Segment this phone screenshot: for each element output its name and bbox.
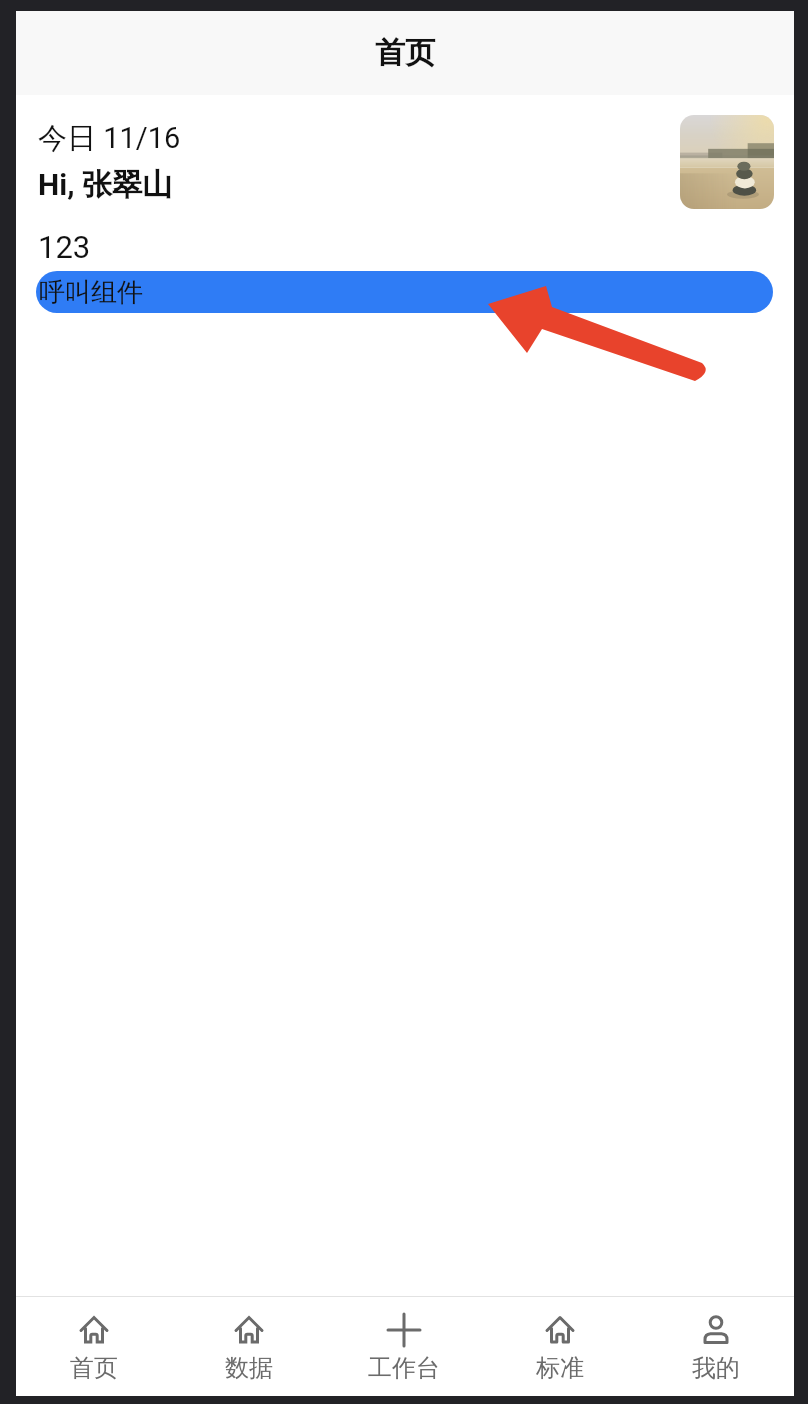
staticText: 工作台 [368,1353,440,1383]
button[interactable]: 数据 [171,1297,326,1396]
staticText: 数据 [225,1353,273,1383]
staticText: 我的 [692,1353,740,1383]
staticText: 123 [38,229,91,265]
staticText: 首页 [70,1353,118,1383]
staticText: Hi, 张翠山 [38,166,172,204]
button[interactable]: 我的 [638,1297,794,1396]
button[interactable]: 工作台 [326,1297,482,1396]
button[interactable]: 标准 [482,1297,638,1396]
button[interactable]: 首页 [16,1297,171,1396]
button[interactable]: 呼叫组件 [36,271,773,313]
staticText: 首页 [375,34,435,72]
staticText: 今日 11/16 [38,120,181,157]
staticText: 标准 [536,1353,584,1383]
staticText: 呼叫组件 [39,276,143,309]
